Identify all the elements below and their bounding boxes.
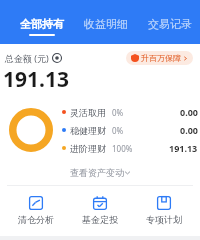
button[interactable]: 稳健理财: [62, 124, 198, 136]
staticText: 0.00: [180, 124, 198, 136]
staticText: 查看资产变动: [70, 167, 124, 178]
staticText: 191.13: [3, 65, 69, 94]
staticText: 收益明细: [84, 17, 128, 31]
staticText: 0%: [112, 107, 124, 118]
staticText: 清仓分析: [18, 214, 54, 225]
staticText: 灵活取用: [70, 107, 106, 118]
button[interactable]: 交易记录: [148, 17, 192, 41]
button[interactable]: 升百万保障: [126, 51, 193, 65]
button[interactable]: 全部持有: [20, 17, 64, 41]
button[interactable]: 灵活取用: [62, 106, 198, 118]
staticText: 全部持有: [20, 17, 64, 31]
staticText: 总金额 (元): [5, 52, 49, 64]
staticText: 稳健理财: [70, 125, 106, 136]
button[interactable]: 清仓分析: [8, 194, 64, 227]
staticText: 基金定投: [82, 214, 118, 225]
staticText: 升百万保障: [141, 53, 181, 63]
button[interactable]: 查看资产变动: [0, 164, 200, 181]
staticText: 191.13: [169, 142, 198, 154]
staticText: 进阶理财: [70, 143, 106, 154]
button[interactable]: 专项计划: [136, 194, 192, 227]
staticText: 交易记录: [148, 17, 192, 31]
button[interactable]: 进阶理财: [62, 142, 198, 154]
staticText: 100%: [112, 143, 133, 154]
button[interactable]: 隐藏金额: [52, 53, 62, 63]
staticText: 0.00: [180, 106, 198, 118]
button[interactable]: 基金定投: [72, 194, 128, 227]
button[interactable]: 收益明细: [84, 17, 128, 41]
staticText: 专项计划: [146, 214, 182, 225]
staticText: 0%: [112, 125, 124, 136]
